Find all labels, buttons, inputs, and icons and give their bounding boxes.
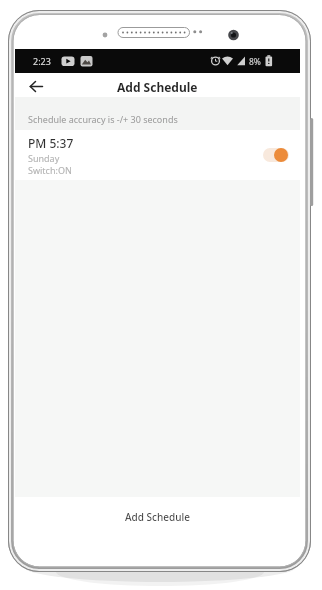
staticText: Add Schedule bbox=[125, 510, 190, 524]
staticText: 8% bbox=[249, 56, 261, 68]
staticText: Sunday bbox=[28, 152, 60, 164]
staticText: PM 5:37 bbox=[28, 135, 74, 151]
staticText: Schedule accuracy is -/+ 30 seconds bbox=[28, 113, 178, 125]
staticText: Switch:ON bbox=[28, 164, 72, 176]
staticText: Add Schedule bbox=[117, 79, 198, 95]
staticText: 2:23 bbox=[33, 55, 51, 67]
